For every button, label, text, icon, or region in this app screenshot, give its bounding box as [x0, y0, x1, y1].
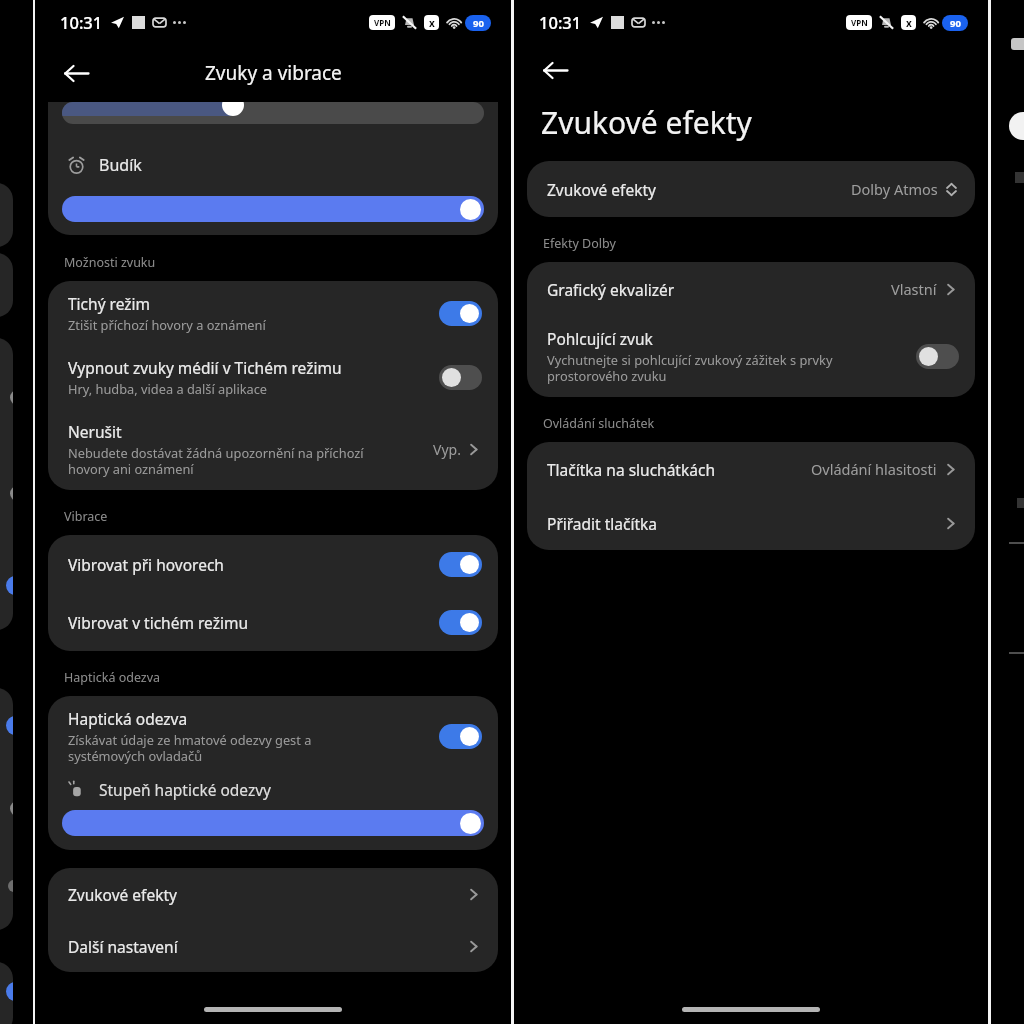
staticText: Ovládání sluchátek — [543, 415, 655, 432]
staticText: Vibrovat při hovorech — [68, 554, 224, 575]
button[interactable]: Back — [532, 47, 578, 93]
button[interactable]: Tichý režim — [48, 281, 498, 345]
button[interactable]: Vypnout zvuky médií v Tichém režimu — [48, 345, 498, 409]
staticText: Nebudete dostávat žádná upozornění na př… — [68, 444, 366, 478]
staticText: Vypnout zvuky médií v Tichém režimu — [68, 357, 342, 378]
staticText: Zvuky a vibrace — [205, 60, 342, 86]
staticText: Tlačítka na sluchátkách — [547, 459, 715, 480]
button[interactable]: Tlačítka na sluchátkách — [527, 442, 975, 496]
staticText: Vibrovat v tichém režimu — [68, 612, 249, 633]
staticText: Vibrace — [64, 508, 108, 525]
staticText: Přiřadit tlačítka — [547, 513, 658, 534]
staticText: Ztišit příchozí hovory a oznámení — [68, 316, 429, 333]
staticText: Možnosti zvuku — [64, 254, 156, 271]
button[interactable]: Haptická odezva — [48, 696, 498, 777]
staticText: Nerušit — [68, 421, 122, 442]
staticText: 10:31 — [60, 11, 103, 33]
staticText: Vychutnejte si pohlcující zvukový zážite… — [547, 351, 834, 385]
button[interactable]: Vibrovat v tichém režimu — [48, 593, 498, 651]
button[interactable]: Přiřadit tlačítka — [527, 496, 975, 550]
staticText: 10:31 — [539, 11, 582, 33]
button[interactable]: Pohlcující zvuk — [527, 316, 975, 397]
staticText: Zvukové efekty — [547, 179, 656, 200]
staticText: x — [906, 16, 912, 30]
staticText: Získávat údaje ze hmatové odezvy gest a … — [68, 731, 357, 765]
staticText: x — [429, 16, 435, 30]
staticText: Hry, hudba, videa a další aplikace — [68, 380, 429, 397]
staticText: Tichý režim — [68, 293, 151, 314]
button[interactable]: Nerušit — [48, 409, 498, 490]
staticText: VPN — [374, 17, 391, 28]
staticText: Stupeň haptické odezvy — [99, 779, 272, 800]
button[interactable]: Toggle on — [439, 610, 482, 635]
button[interactable]: Zvukové efekty — [48, 868, 498, 920]
button[interactable]: Haptic level — [62, 810, 484, 836]
button[interactable]: Zvukové efekty — [527, 161, 975, 217]
staticText: 90 — [950, 17, 961, 30]
staticText: Vlastní — [891, 279, 937, 299]
staticText: Zvukové efekty — [68, 884, 177, 905]
staticText: Další nastavení — [68, 936, 178, 957]
staticText: Ovládání hlasitosti — [811, 459, 937, 479]
staticText: Vyp. — [433, 440, 461, 459]
staticText: Dolby Atmos — [851, 179, 938, 199]
staticText: 90 — [473, 17, 484, 30]
staticText: Grafický ekvalizér — [547, 279, 675, 300]
staticText: VPN — [851, 17, 868, 28]
button[interactable]: Alarm volume — [62, 196, 484, 222]
button[interactable]: Vibrovat při hovorech — [48, 535, 498, 593]
button[interactable]: Další nastavení — [48, 920, 498, 972]
button[interactable]: Budík — [48, 102, 498, 235]
button[interactable]: Toggle on — [439, 724, 482, 749]
button[interactable]: Toggle on — [439, 552, 482, 577]
staticText: Budík — [99, 154, 142, 176]
button[interactable]: Back — [53, 50, 99, 96]
button[interactable]: Toggle off — [916, 344, 959, 369]
button[interactable]: Toggle on — [439, 301, 482, 326]
button[interactable]: Toggle off — [439, 365, 482, 390]
staticText: Haptická odezva — [68, 708, 188, 729]
button[interactable]: Grafický ekvalizér — [527, 262, 975, 316]
staticText: Pohlcující zvuk — [547, 328, 653, 349]
staticText: Zvukové efekty — [541, 102, 752, 143]
staticText: Haptická odezva — [64, 669, 161, 686]
staticText: Efekty Dolby — [543, 235, 616, 252]
